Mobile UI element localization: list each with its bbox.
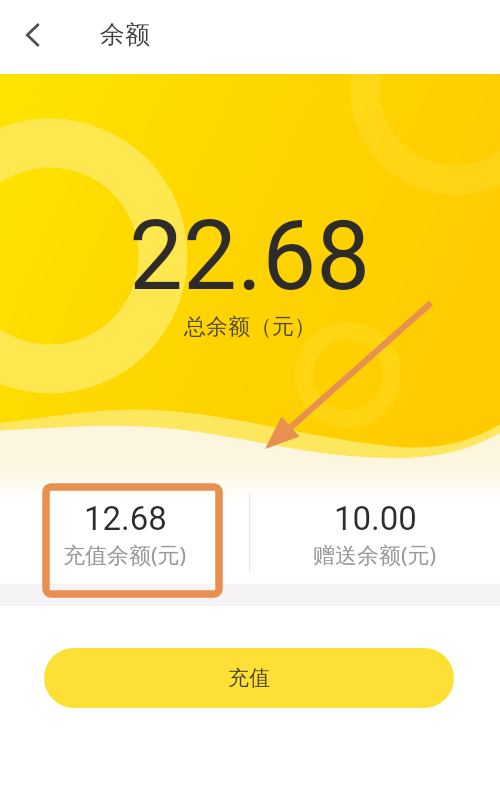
staticText: 余额: [100, 19, 150, 50]
staticText: 10.00: [334, 499, 417, 538]
staticText: 赠送余额(元): [313, 539, 437, 569]
staticText: 12.68: [84, 499, 167, 538]
button[interactable]: 10.00: [250, 499, 500, 569]
staticText: 充值: [228, 665, 270, 691]
staticText: 22.68: [129, 200, 371, 313]
button[interactable]: 充值: [44, 648, 454, 708]
button[interactable]: Back: [11, 13, 55, 57]
staticText: 总余额（元）: [184, 313, 316, 341]
button[interactable]: 12.68: [0, 499, 250, 569]
staticText: 充值余额(元): [63, 539, 187, 569]
